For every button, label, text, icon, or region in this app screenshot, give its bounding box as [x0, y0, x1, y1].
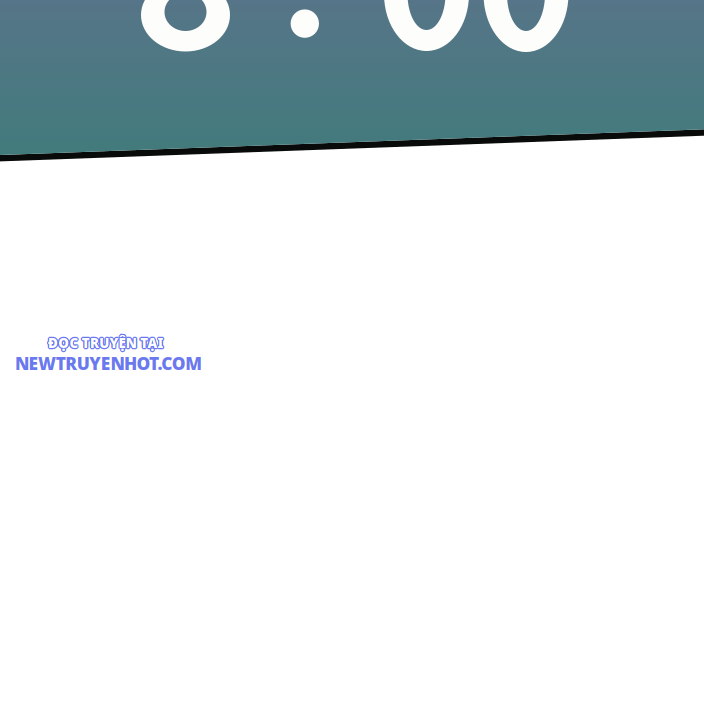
staticText: ĐỌC TRUYỆN TẠI	[49, 334, 165, 352]
staticText: ĐỌC TRUYỆN TẠI	[48, 334, 164, 352]
staticText: ĐỌC TRUYỆN TẠI	[48, 335, 164, 353]
staticText: ĐỌC TRUYỆN TẠI	[47, 334, 162, 352]
staticText: ĐỌC TRUYỆN TẠI	[49, 333, 164, 351]
staticText: ĐỌC TRUYỆN TẠI	[47, 335, 163, 352]
staticText: ĐỌC TRUYỆN TẠI	[47, 333, 163, 351]
staticText: ĐỌC TRUYỆN TẠI	[48, 333, 164, 350]
button[interactable]: Comic page	[0, 0, 704, 704]
staticText: NEWTRUYENHOT.COM	[15, 352, 202, 375]
staticText: ĐỌC TRUYỆN TẠI	[49, 335, 164, 352]
